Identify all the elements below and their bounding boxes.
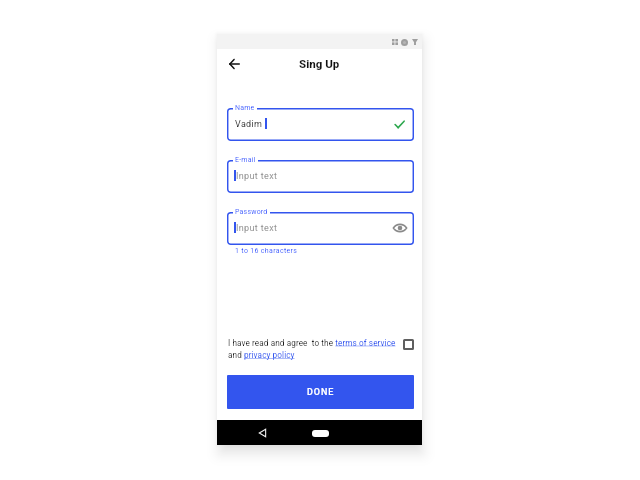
- button[interactable]: Back: [253, 424, 271, 442]
- button[interactable]: Input text: [227, 160, 414, 193]
- staticText: Input text: [236, 171, 278, 182]
- staticText: E-mail: [235, 156, 256, 164]
- button[interactable]: terms of service: [333, 339, 383, 348]
- button[interactable]: Home: [308, 425, 332, 441]
- staticText: Sing Up: [299, 57, 340, 70]
- staticText: Vadim: [235, 119, 263, 130]
- staticText: DONE: [307, 387, 335, 398]
- staticText: 1 to 16 characters: [235, 247, 298, 255]
- button[interactable]: Back: [223, 53, 245, 75]
- button[interactable]: Input text: [227, 212, 414, 245]
- staticText: Password: [235, 208, 268, 216]
- staticText: Name: [235, 104, 255, 112]
- button[interactable]: Agree to terms and privacy policy: [400, 336, 416, 352]
- button[interactable]: DONE: [227, 375, 414, 409]
- button[interactable]: Show password: [385, 219, 405, 239]
- button[interactable]: Vadim: [227, 108, 414, 141]
- staticText: I have read and agree to the terms of se…: [228, 338, 396, 360]
- staticText: Input text: [236, 223, 278, 234]
- button[interactable]: privacy policy: [245, 351, 293, 360]
